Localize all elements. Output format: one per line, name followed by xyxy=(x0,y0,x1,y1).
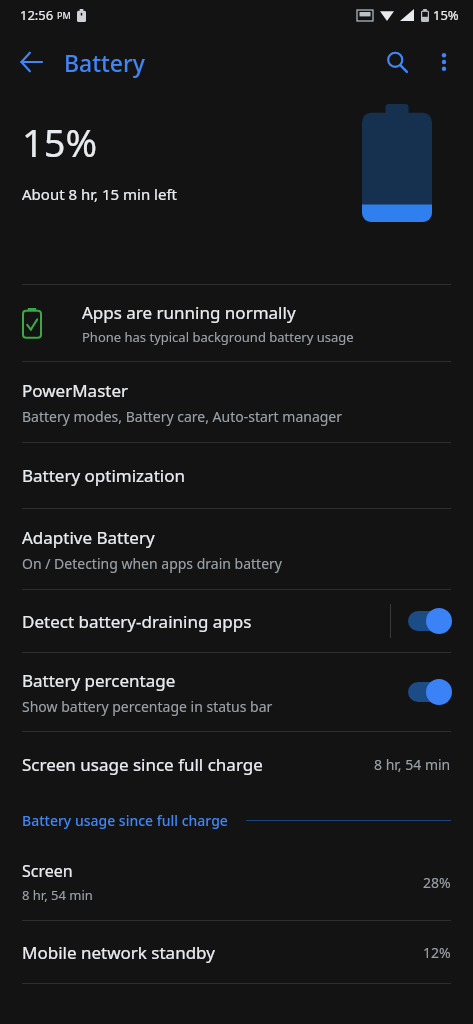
staticText: About 8 hr, 15 min left xyxy=(22,184,177,204)
staticText: Phone has typical background battery usa… xyxy=(82,328,354,346)
staticText: Detect battery-draining apps xyxy=(22,610,390,633)
button[interactable]: More options xyxy=(421,39,467,85)
staticText: Battery percentage xyxy=(22,669,176,692)
staticText: Battery xyxy=(64,47,145,78)
staticText: PM xyxy=(57,9,71,21)
button[interactable]: Mobile network standby xyxy=(0,921,473,983)
button[interactable]: Battery percentage xyxy=(0,653,473,731)
button[interactable]: PowerMaster xyxy=(0,362,473,442)
staticText: 8 hr, 54 min xyxy=(22,886,93,904)
button[interactable]: Apps are running normally xyxy=(0,285,473,361)
staticText: On / Detecting when apps drain battery xyxy=(22,554,282,573)
button[interactable]: Screen xyxy=(0,844,473,920)
staticText: Screen usage since full charge xyxy=(22,753,374,776)
button[interactable]: Detect battery-draining apps xyxy=(0,590,473,652)
button[interactable]: Screen usage since full charge xyxy=(0,732,473,796)
staticText: 28% xyxy=(423,873,451,892)
staticText: 15% xyxy=(433,6,459,24)
button[interactable]: Battery optimization xyxy=(0,443,473,508)
staticText: PowerMaster xyxy=(22,379,129,402)
staticText: Battery usage since full charge xyxy=(22,811,228,830)
button[interactable]: Search xyxy=(373,38,421,86)
staticText: 8 hr, 54 min xyxy=(374,755,451,774)
staticText: Apps are running normally xyxy=(82,301,296,324)
button[interactable]: Adaptive Battery xyxy=(0,509,473,589)
staticText: 12% xyxy=(423,943,451,962)
staticText: Battery modes, Battery care, Auto-start … xyxy=(22,407,343,426)
button[interactable]: Back xyxy=(8,39,54,85)
staticText: 15% xyxy=(22,116,98,168)
staticText: Adaptive Battery xyxy=(22,526,155,549)
staticText: Battery optimization xyxy=(22,464,185,487)
staticText: 12:56 xyxy=(20,6,54,24)
staticText: Mobile network standby xyxy=(22,941,423,964)
staticText: Show battery percentage in status bar xyxy=(22,697,273,716)
staticText: Screen xyxy=(22,860,73,882)
